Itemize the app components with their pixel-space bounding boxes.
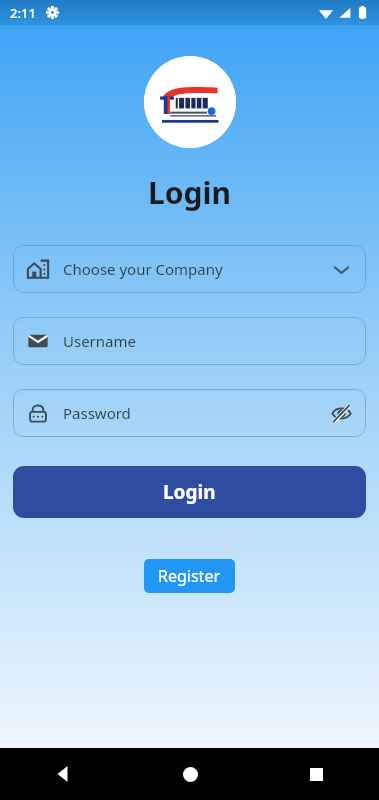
button[interactable]: Home <box>127 748 253 800</box>
staticText: Login <box>0 172 379 213</box>
other: Show password <box>331 403 352 424</box>
staticText: Username <box>63 331 136 351</box>
staticText: Login <box>163 479 216 505</box>
button[interactable]: Choose your Company <box>13 245 366 293</box>
button[interactable]: Recent apps <box>253 748 379 800</box>
button[interactable]: Password <box>13 389 366 437</box>
button[interactable]: Username <box>13 317 366 365</box>
other: Open company list <box>331 259 352 280</box>
staticText: 2:11 <box>10 4 36 22</box>
button[interactable]: Login <box>13 466 366 518</box>
staticText: Password <box>63 403 131 423</box>
staticText: Register <box>158 565 221 587</box>
staticText: Choose your Company <box>63 259 223 279</box>
button[interactable]: Back <box>0 748 127 800</box>
button[interactable]: Register <box>144 559 235 593</box>
